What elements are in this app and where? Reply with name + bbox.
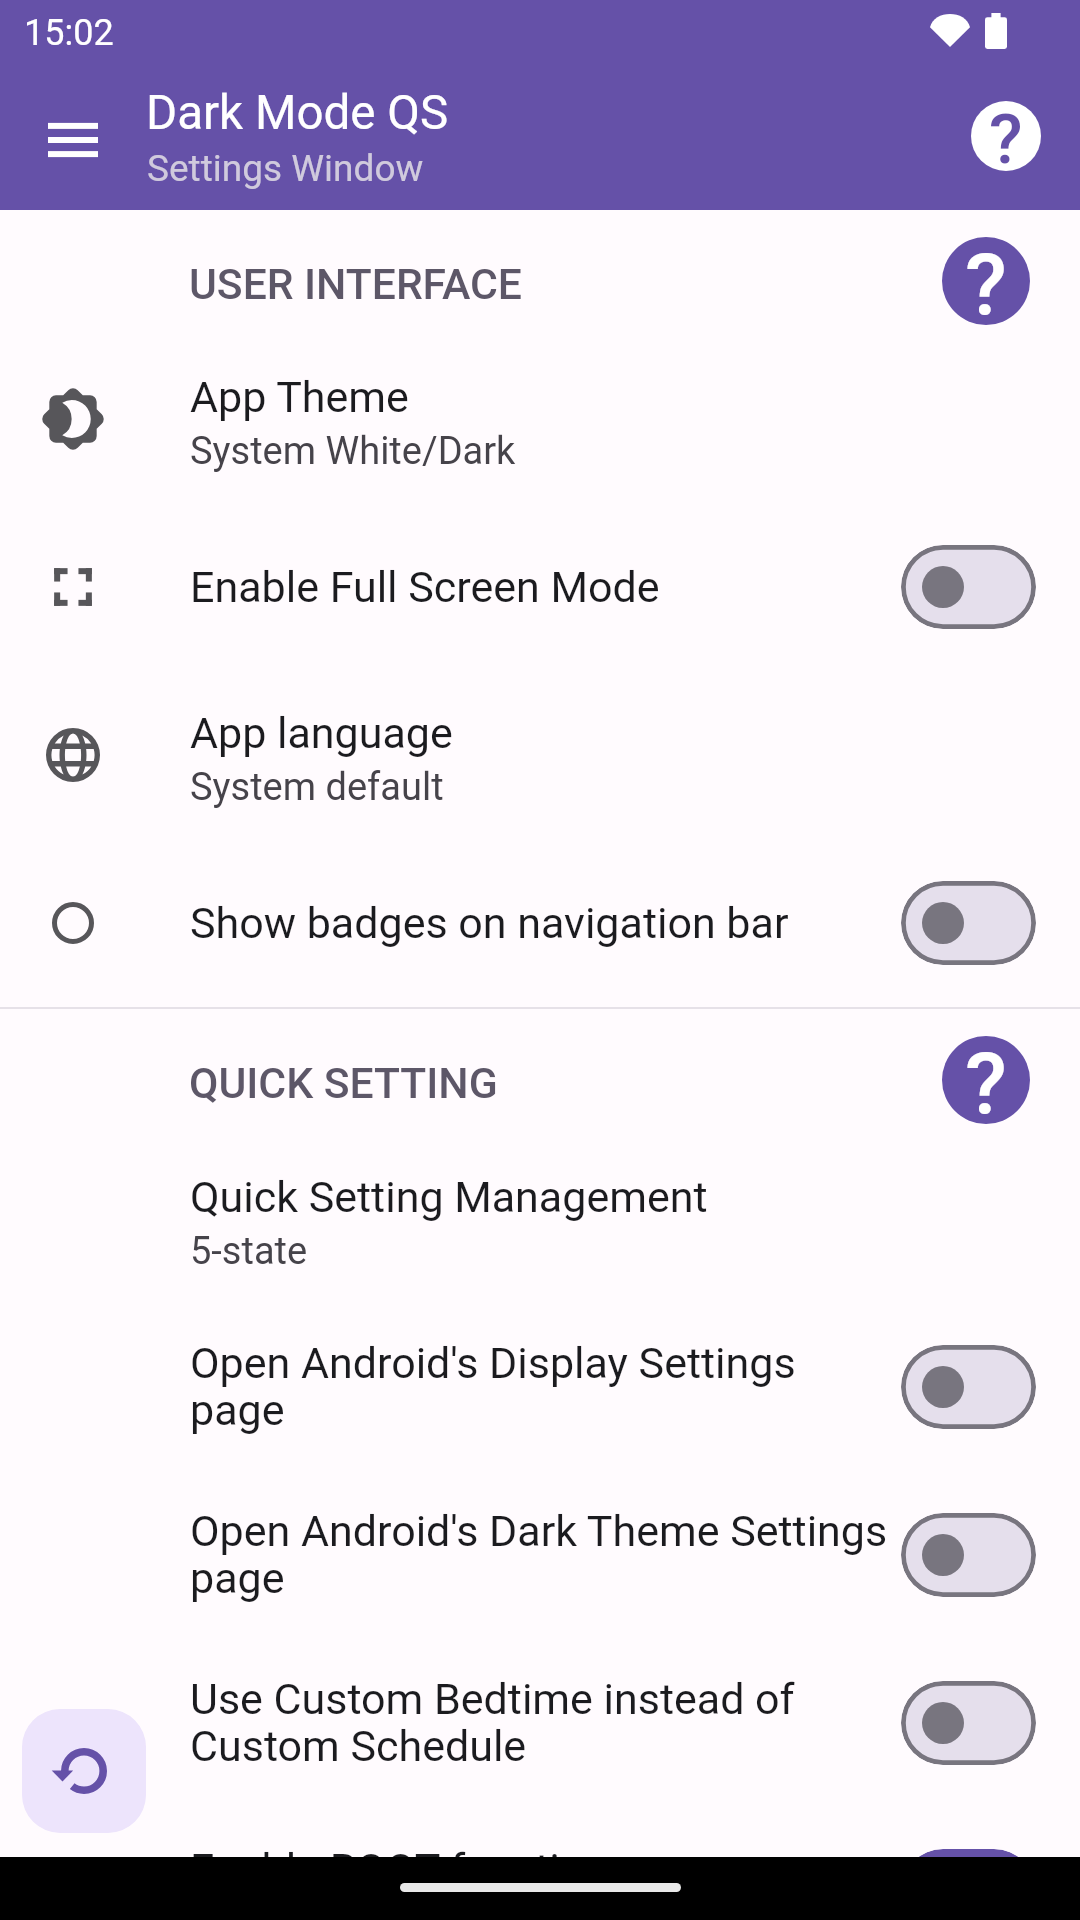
- staticText: Open Android's Dark Theme Settings page: [190, 1506, 893, 1604]
- button[interactable]: Open navigation menu: [13, 80, 133, 200]
- button[interactable]: Open Android's Dark Theme Settings page: [0, 1471, 1080, 1639]
- staticText: System default: [190, 765, 444, 810]
- staticText: Settings Window: [147, 147, 424, 190]
- staticText: Show badges on navigation bar: [190, 898, 789, 948]
- staticText: ?: [989, 101, 1023, 169]
- staticText: Enable Full Screen Mode: [190, 562, 660, 612]
- button[interactable]: Toggle Use Custom Bedtime instead of Cus…: [901, 1681, 1036, 1765]
- button[interactable]: Toggle Open Android's Display Settings p…: [901, 1345, 1036, 1429]
- button[interactable]: Toggle Show badges on navigation bar: [901, 881, 1036, 965]
- staticText: Use Custom Bedtime instead of Custom Sch…: [190, 1674, 893, 1772]
- button[interactable]: Section help: [942, 1036, 1030, 1124]
- button[interactable]: Use Custom Bedtime instead of Custom Sch…: [0, 1639, 1080, 1807]
- button[interactable]: Toggle Enable ROOT function: [901, 1849, 1036, 1920]
- button[interactable]: Enable ROOT function: [0, 1807, 1080, 1920]
- staticText: Open Android's Display Settings page: [190, 1338, 893, 1436]
- staticText: App language: [190, 708, 453, 758]
- button[interactable]: Quick Setting Management: [0, 1135, 1080, 1303]
- staticText: USER INTERFACE: [189, 259, 522, 309]
- button[interactable]: Toggle Open Android's Dark Theme Setting…: [901, 1513, 1036, 1597]
- button[interactable]: Restore defaults: [22, 1709, 146, 1833]
- button[interactable]: App Theme: [0, 335, 1080, 503]
- staticText: Quick Setting Management: [190, 1172, 708, 1222]
- staticText: App Theme: [190, 372, 409, 422]
- button[interactable]: Toggle Enable Full Screen Mode: [901, 545, 1036, 629]
- button[interactable]: Enable Full Screen Mode: [0, 503, 1080, 671]
- staticText: Dark Mode QS: [146, 85, 449, 141]
- staticText: System White/Dark: [190, 429, 516, 474]
- button[interactable]: App language: [0, 671, 1080, 839]
- button[interactable]: Help: [956, 86, 1056, 186]
- staticText: 15:02: [24, 12, 114, 54]
- staticText: QUICK SETTING: [189, 1058, 498, 1108]
- staticText: 5-state: [190, 1229, 308, 1274]
- staticText: Enable ROOT function: [190, 1844, 608, 1894]
- staticText: ?: [965, 1036, 1007, 1122]
- button[interactable]: Open Android's Display Settings page: [0, 1303, 1080, 1471]
- staticText: ?: [965, 237, 1007, 323]
- button[interactable]: Section help: [942, 237, 1030, 325]
- button[interactable]: Show badges on navigation bar: [0, 839, 1080, 1007]
